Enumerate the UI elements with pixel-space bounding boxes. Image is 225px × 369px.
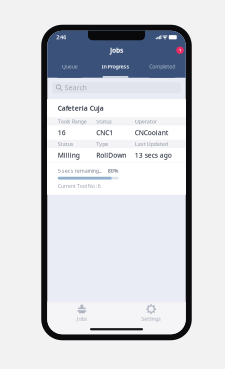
staticText: Completed: [149, 63, 175, 70]
staticText: 1: [179, 48, 181, 53]
button[interactable]: In Progress: [92, 57, 139, 78]
staticText: RollDown: [96, 151, 126, 160]
staticText: 16: [58, 128, 66, 137]
staticText: CNC1: [96, 128, 113, 137]
button[interactable]: Jobs: [62, 303, 102, 323]
staticText: 80%: [108, 167, 119, 174]
staticText: Type: [96, 140, 108, 148]
staticText: In Progress: [101, 63, 129, 70]
staticText: Milling: [58, 151, 80, 160]
staticText: Status: [96, 118, 112, 125]
staticText: Jobs: [110, 46, 123, 55]
staticText: 5 secs remaining...: [58, 167, 102, 174]
staticText: Status: [58, 140, 74, 148]
staticText: Last Updated: [135, 140, 168, 148]
staticText: Cafeteria Cuja: [58, 104, 104, 113]
staticText: CNCoolant: [135, 128, 169, 137]
staticText: 2:46: [56, 34, 66, 41]
button[interactable]: Alerts: [176, 46, 184, 54]
staticText: Current Tool No : 6: [58, 182, 101, 189]
staticText: 13 secs ago: [135, 151, 172, 160]
staticText: Queue: [62, 63, 78, 70]
button[interactable]: Completed: [139, 57, 186, 78]
button[interactable]: Queue: [47, 57, 92, 78]
staticText: Jobs: [76, 315, 87, 322]
staticText: Tools Range: [58, 118, 87, 125]
button[interactable]: Settings: [131, 303, 171, 323]
button[interactable]: Cafeteria Cuja: [47, 99, 186, 194]
staticText: Operator: [135, 118, 157, 125]
staticText: Search: [65, 83, 87, 92]
staticText: Settings: [141, 315, 161, 322]
